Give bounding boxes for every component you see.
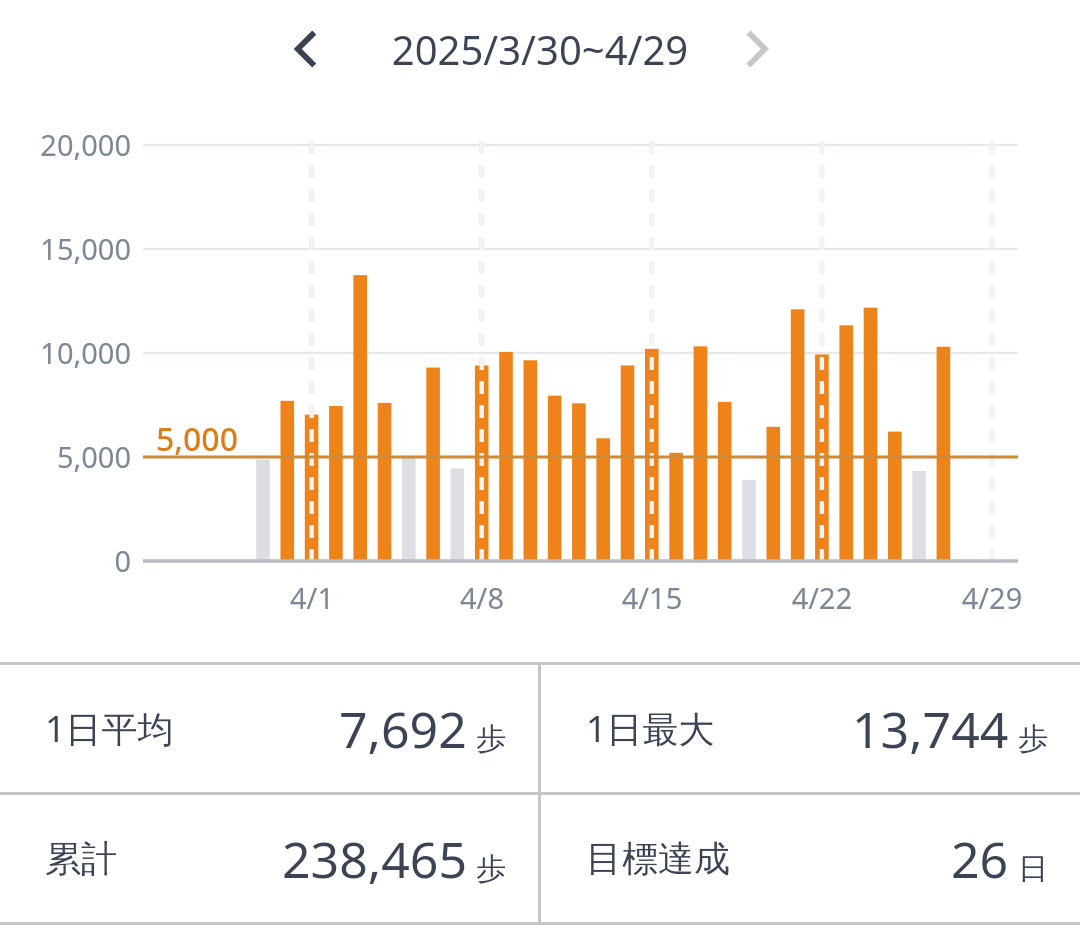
staticText: 4/15	[582, 578, 722, 617]
staticText: 歩	[1018, 720, 1048, 758]
staticText: 20,000	[0, 125, 131, 164]
staticText: 5,000	[156, 417, 238, 461]
staticText: 2025/3/30~4/29	[0, 22, 1080, 76]
staticText: 4/1	[242, 578, 382, 617]
staticText: 4/22	[752, 578, 892, 617]
staticText: 4/8	[412, 578, 552, 617]
staticText: 13,744	[852, 695, 1009, 763]
staticText: 10,000	[0, 333, 131, 372]
staticText: 歩	[476, 720, 506, 758]
button[interactable]: Previous period	[272, 16, 338, 82]
button[interactable]: Next period	[724, 16, 790, 82]
staticText: 歩	[476, 850, 506, 888]
button[interactable]: 1日平均	[0, 665, 538, 792]
button[interactable]: 目標達成	[541, 795, 1080, 922]
staticText: 15,000	[0, 229, 131, 268]
staticText: 目標達成	[586, 836, 730, 881]
staticText: 日	[1018, 850, 1048, 888]
button[interactable]: 累計	[0, 795, 538, 922]
staticText: 1日平均	[45, 704, 174, 753]
staticText: 4/29	[922, 578, 1062, 617]
staticText: 238,465	[282, 825, 467, 893]
staticText: 1日最大	[586, 704, 715, 753]
button[interactable]: 1日最大	[541, 665, 1080, 792]
staticText: 5,000	[0, 437, 131, 476]
staticText: 26	[951, 825, 1009, 893]
staticText: 累計	[45, 836, 117, 881]
staticText: 0	[0, 541, 131, 580]
staticText: 7,692	[339, 695, 467, 763]
